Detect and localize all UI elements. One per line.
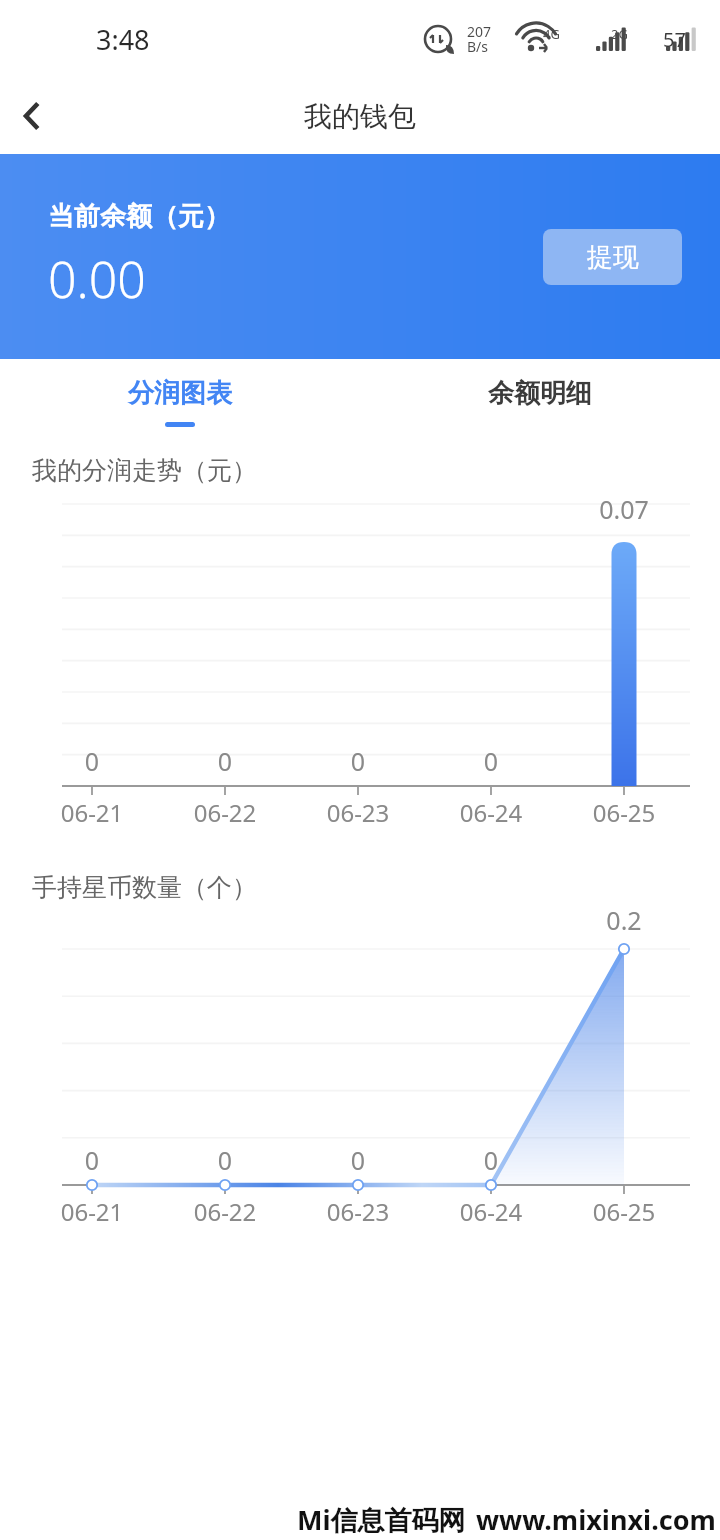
- staticText: 0.07: [584, 492, 664, 526]
- button[interactable]: Back: [0, 84, 64, 148]
- button[interactable]: 分润图表: [0, 377, 360, 427]
- staticText: 0: [451, 744, 531, 778]
- staticText: 3:48: [96, 21, 150, 58]
- staticText: 我的钱包: [304, 99, 416, 134]
- button[interactable]: 余额明细: [360, 377, 720, 427]
- staticText: 06-21: [47, 796, 137, 829]
- staticText: 57: [663, 26, 686, 53]
- staticText: 06-24: [446, 796, 536, 829]
- staticText: 0: [185, 744, 265, 778]
- button[interactable]: 提现: [543, 229, 682, 285]
- staticText: 06-23: [313, 796, 403, 829]
- staticText: 0: [185, 1143, 265, 1177]
- staticText: 2G: [611, 25, 628, 43]
- staticText: 4G: [543, 25, 560, 43]
- staticText: 207 B/s: [467, 22, 492, 56]
- staticText: 06-24: [446, 1195, 536, 1228]
- staticText: 06-25: [579, 796, 669, 829]
- staticText: 0: [52, 1143, 132, 1177]
- staticText: www.mixinxi.com: [476, 1501, 716, 1538]
- staticText: Mi信息首码网: [297, 1501, 466, 1538]
- staticText: 06-25: [579, 1195, 669, 1228]
- staticText: 当前余额（元）: [48, 200, 230, 233]
- staticText: 手持星币数量（个）: [32, 872, 257, 903]
- staticText: 06-22: [180, 1195, 270, 1228]
- staticText: 分润图表: [128, 377, 232, 410]
- staticText: 0: [52, 744, 132, 778]
- staticText: 0: [318, 744, 398, 778]
- staticText: 余额明细: [488, 377, 592, 410]
- staticText: 0: [318, 1143, 398, 1177]
- staticText: 提现: [587, 241, 639, 274]
- staticText: 06-21: [47, 1195, 137, 1228]
- staticText: 0: [451, 1143, 531, 1177]
- staticText: 我的分润走势（元）: [32, 455, 257, 486]
- staticText: 0.2: [584, 903, 664, 937]
- staticText: 06-23: [313, 1195, 403, 1228]
- staticText: 0.00: [48, 245, 146, 313]
- staticText: 06-22: [180, 796, 270, 829]
